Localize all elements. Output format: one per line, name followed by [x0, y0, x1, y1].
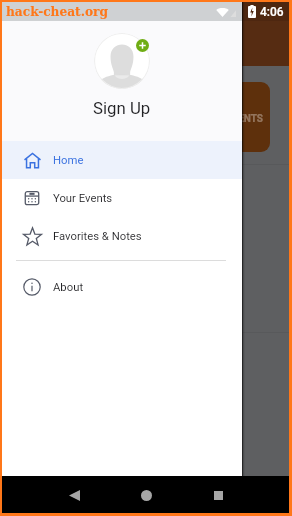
staticText: Your Events — [53, 192, 113, 205]
button[interactable]: Home — [2, 141, 242, 179]
button[interactable]: About — [2, 268, 242, 306]
staticText: About — [53, 281, 84, 294]
button[interactable]: Back — [56, 477, 92, 513]
button[interactable]: Favorites & Notes — [2, 217, 242, 255]
staticText: Favorites & Notes — [53, 230, 142, 243]
staticText: hack-cheat.org — [6, 5, 109, 19]
button[interactable]: Your Events — [2, 179, 242, 217]
staticText: Sign Up — [93, 98, 151, 118]
staticText: Home — [53, 154, 84, 167]
staticText: 4:06 — [260, 5, 284, 19]
button[interactable]: Recent apps — [200, 477, 236, 513]
staticText: EVENTS — [226, 113, 263, 125]
button[interactable]: Home — [128, 477, 164, 513]
button[interactable]: Sign up — [136, 39, 149, 52]
